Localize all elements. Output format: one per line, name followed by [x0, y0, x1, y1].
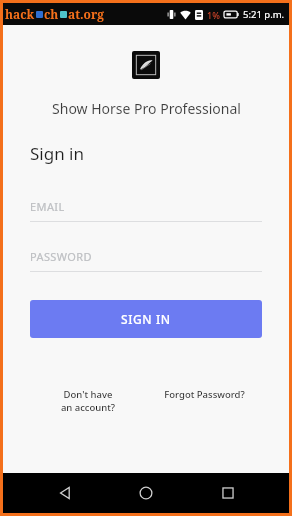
- staticText: hack: [5, 6, 35, 22]
- staticText: Show Horse Pro Professional: [52, 99, 241, 118]
- staticText: 5:21 p.m.: [243, 8, 285, 21]
- button[interactable]: Recent apps: [208, 473, 248, 513]
- button[interactable]: Don't have an account?: [30, 388, 146, 414]
- staticText: ch: [44, 6, 59, 22]
- button[interactable]: PASSWORD: [30, 245, 262, 272]
- staticText: Sign in: [30, 142, 84, 165]
- staticText: PASSWORD: [30, 249, 92, 264]
- staticText: Forgot Password?: [164, 388, 245, 401]
- button[interactable]: Forgot Password?: [146, 388, 262, 401]
- staticText: at.org: [68, 6, 104, 22]
- button[interactable]: Home: [126, 473, 166, 513]
- button[interactable]: Back: [45, 473, 85, 513]
- staticText: EMAIL: [30, 199, 65, 214]
- staticText: Don't have an account?: [57, 388, 119, 414]
- button[interactable]: EMAIL: [30, 195, 262, 222]
- button[interactable]: SIGN IN: [30, 300, 262, 338]
- staticText: 1%: [207, 9, 220, 21]
- staticText: SIGN IN: [121, 311, 171, 327]
